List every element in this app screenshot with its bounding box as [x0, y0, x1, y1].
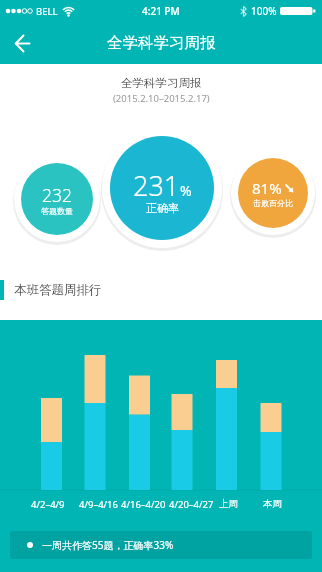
button[interactable] [0, 22, 44, 64]
staticText: 上周 [219, 498, 238, 510]
staticText: 正确率 [146, 201, 179, 215]
button[interactable]: 一周共作答55题，正确率33% [10, 531, 312, 559]
staticText: BELL [36, 5, 58, 18]
staticText: % [180, 181, 192, 200]
staticText: 232 [42, 183, 72, 207]
button[interactable]: 231 [110, 136, 214, 240]
button[interactable]: 232 [21, 163, 93, 235]
staticText: 4/20–4/27 [169, 498, 214, 511]
staticText: 一周共作答55题，正确率33% [42, 538, 174, 552]
staticText: 81% [252, 178, 282, 198]
staticText: 答题数量 [41, 206, 73, 216]
staticText: 全学科学习周报 [107, 33, 216, 53]
staticText: 本周 [263, 498, 282, 510]
staticText: 全学科学习周报 [121, 76, 202, 90]
staticText: 4/16–4/20 [121, 498, 166, 511]
staticText: 4/9–4/16 [79, 498, 118, 511]
staticText: 击败百分比 [253, 198, 293, 208]
staticText: 4/2–4/9 [31, 498, 65, 511]
button[interactable]: 81% [238, 158, 308, 228]
staticText: 4:21 PM [142, 4, 180, 18]
staticText: 231 [133, 167, 180, 204]
staticText: 本班答题周排行 [14, 282, 102, 298]
staticText: 100% [251, 4, 277, 18]
staticText: (2015.2.10–2015.2.17) [113, 92, 210, 105]
